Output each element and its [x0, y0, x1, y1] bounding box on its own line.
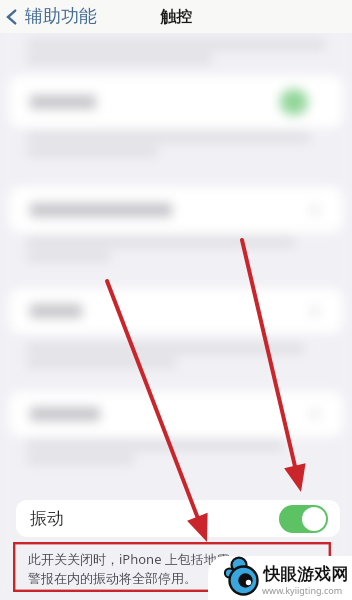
- staticText: www.kyiigting.com: [262, 584, 343, 596]
- staticText: 快眼游戏网: [263, 564, 348, 585]
- staticText: 此开关关闭时，iPhone 上包括地震: [28, 550, 230, 568]
- button[interactable]: 振动 switch, on: [279, 505, 328, 533]
- button[interactable]: 振动: [16, 500, 340, 537]
- staticText: 触控: [160, 7, 192, 27]
- staticText: 振动: [30, 508, 64, 529]
- staticText: 辅助功能: [25, 5, 97, 28]
- staticText: 警报在内的振动将全部停用。: [28, 570, 197, 586]
- button[interactable]: 辅助功能: [0, 2, 105, 31]
